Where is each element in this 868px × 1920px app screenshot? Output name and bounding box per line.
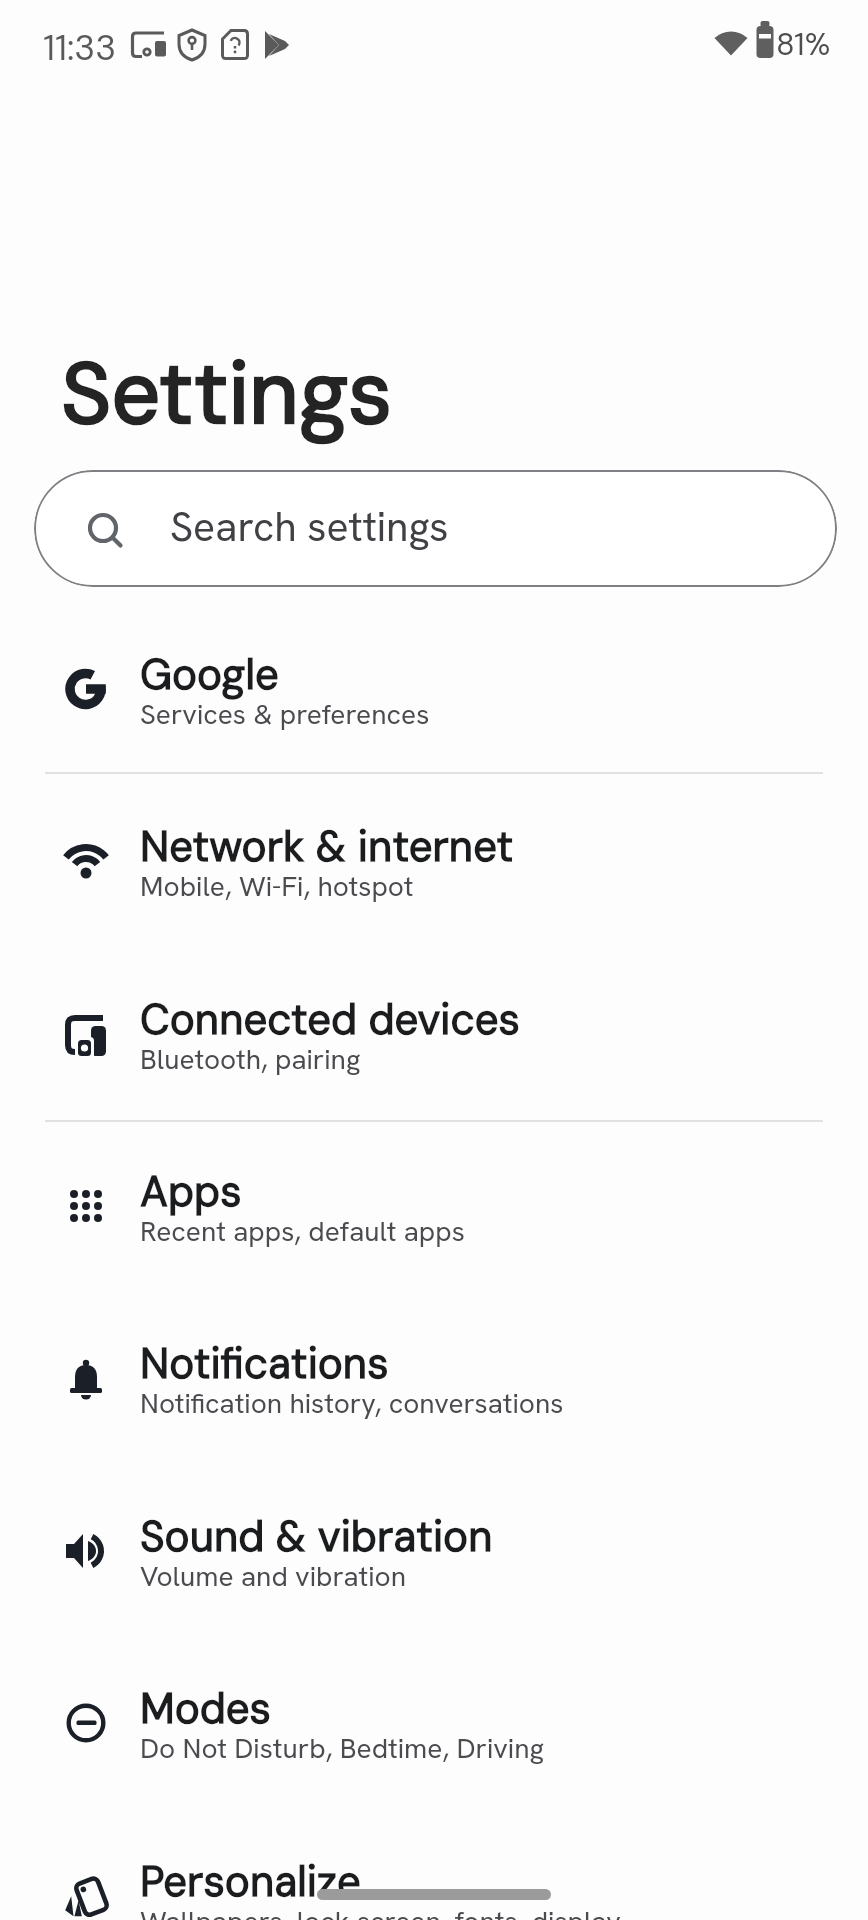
staticText: Services & preferences	[140, 696, 430, 732]
button[interactable]: Notifications	[0, 1297, 868, 1469]
button[interactable]: Sound & vibration	[0, 1470, 868, 1642]
button[interactable]: Google	[0, 608, 868, 780]
staticText: Notification history, conversations	[140, 1385, 564, 1421]
button[interactable]: Apps	[0, 1125, 868, 1297]
staticText: Apps	[140, 1164, 242, 1219]
button[interactable]: Modes	[0, 1642, 868, 1814]
staticText: 11:33	[43, 25, 117, 71]
staticText: Modes	[140, 1681, 271, 1736]
staticText: Sound & vibration	[140, 1509, 493, 1564]
staticText: Settings	[61, 338, 393, 450]
staticText: Search settings	[170, 500, 449, 553]
staticText: Google	[140, 647, 279, 702]
staticText: Do Not Disturb, Bedtime, Driving	[140, 1730, 544, 1766]
staticText: Network & internet	[140, 819, 514, 874]
staticText: Bluetooth, pairing	[140, 1041, 361, 1077]
button[interactable]: Network & internet	[0, 780, 868, 952]
staticText: Connected devices	[140, 992, 520, 1047]
button[interactable]: Search settings	[34, 470, 837, 587]
staticText: 81%	[776, 24, 831, 64]
button[interactable]: Personalize	[0, 1815, 868, 1920]
staticText: Mobile, Wi-Fi, hotspot	[140, 868, 414, 904]
staticText: Notifications	[140, 1336, 389, 1391]
staticText: Personalize	[140, 1854, 361, 1909]
button[interactable]: Connected devices	[0, 953, 868, 1125]
staticText: Wallpapers, lock screen, fonts, display	[140, 1903, 621, 1920]
staticText: Recent apps, default apps	[140, 1213, 465, 1249]
staticText: Volume and vibration	[140, 1558, 407, 1594]
